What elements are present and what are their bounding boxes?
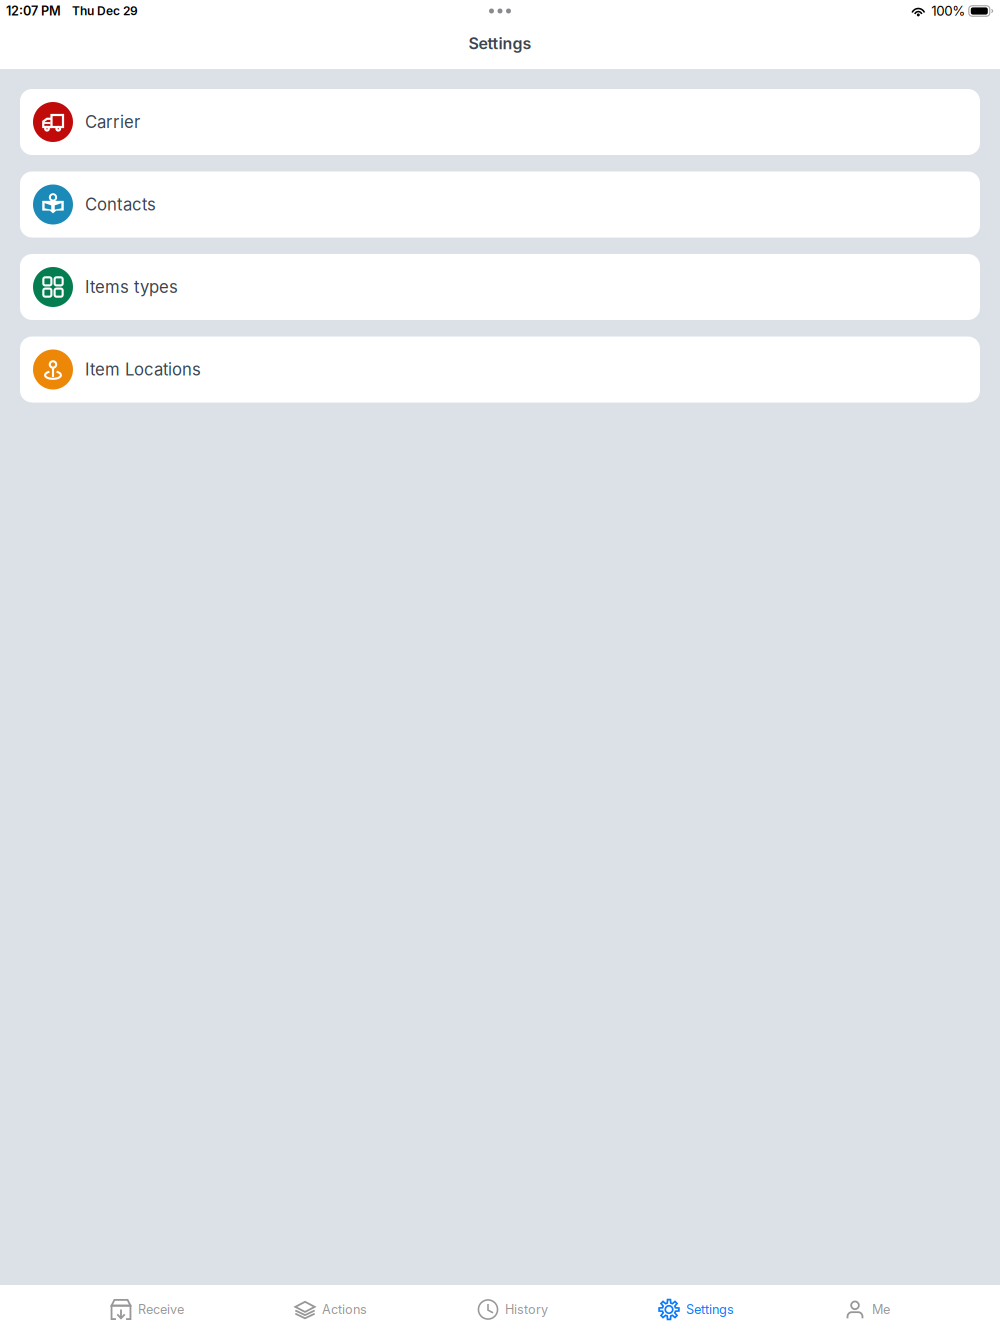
staticText: Settings xyxy=(686,1302,734,1317)
staticText: Settings xyxy=(468,34,531,53)
staticText: Item Locations xyxy=(85,359,201,380)
button[interactable]: Receive xyxy=(110,1285,184,1334)
button[interactable]: History xyxy=(477,1285,548,1334)
button[interactable]: Me xyxy=(844,1285,890,1334)
button[interactable]: Carrier xyxy=(20,89,980,155)
staticText: History xyxy=(505,1302,548,1317)
staticText: Carrier xyxy=(85,112,140,132)
staticText: Items types xyxy=(85,277,178,297)
staticText: Actions xyxy=(322,1302,367,1317)
staticText: 100% xyxy=(931,3,965,19)
button[interactable]: Settings xyxy=(658,1285,734,1334)
staticText: Receive xyxy=(138,1302,184,1317)
staticText: Me xyxy=(872,1302,890,1317)
button[interactable]: Item Locations xyxy=(20,336,980,402)
button[interactable]: Actions xyxy=(294,1285,367,1334)
staticText: Contacts xyxy=(85,194,156,215)
button[interactable]: Contacts xyxy=(20,171,980,237)
button[interactable]: Items types xyxy=(20,254,980,320)
staticText: 12:07 PM xyxy=(6,3,61,19)
staticText: Thu Dec 29 xyxy=(72,4,138,18)
